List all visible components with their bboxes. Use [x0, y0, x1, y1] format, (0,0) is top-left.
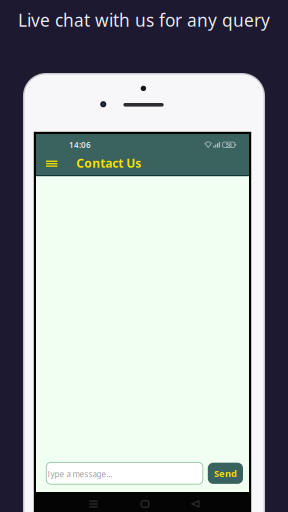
button[interactable]: Back	[183, 494, 207, 512]
staticText: Send	[214, 467, 237, 479]
staticText: 14:06	[69, 139, 91, 150]
button[interactable]: Send	[208, 463, 243, 484]
staticText: Contact Us	[76, 155, 141, 171]
button[interactable]: Type a message...	[46, 462, 203, 484]
staticText: 56	[226, 141, 232, 148]
staticText: Type a message...	[46, 469, 112, 479]
button[interactable]: Home	[133, 494, 157, 512]
button[interactable]: Menu	[40, 151, 64, 175]
button[interactable]: Recent apps	[81, 494, 105, 512]
staticText: Live chat with us for any query	[18, 8, 270, 31]
